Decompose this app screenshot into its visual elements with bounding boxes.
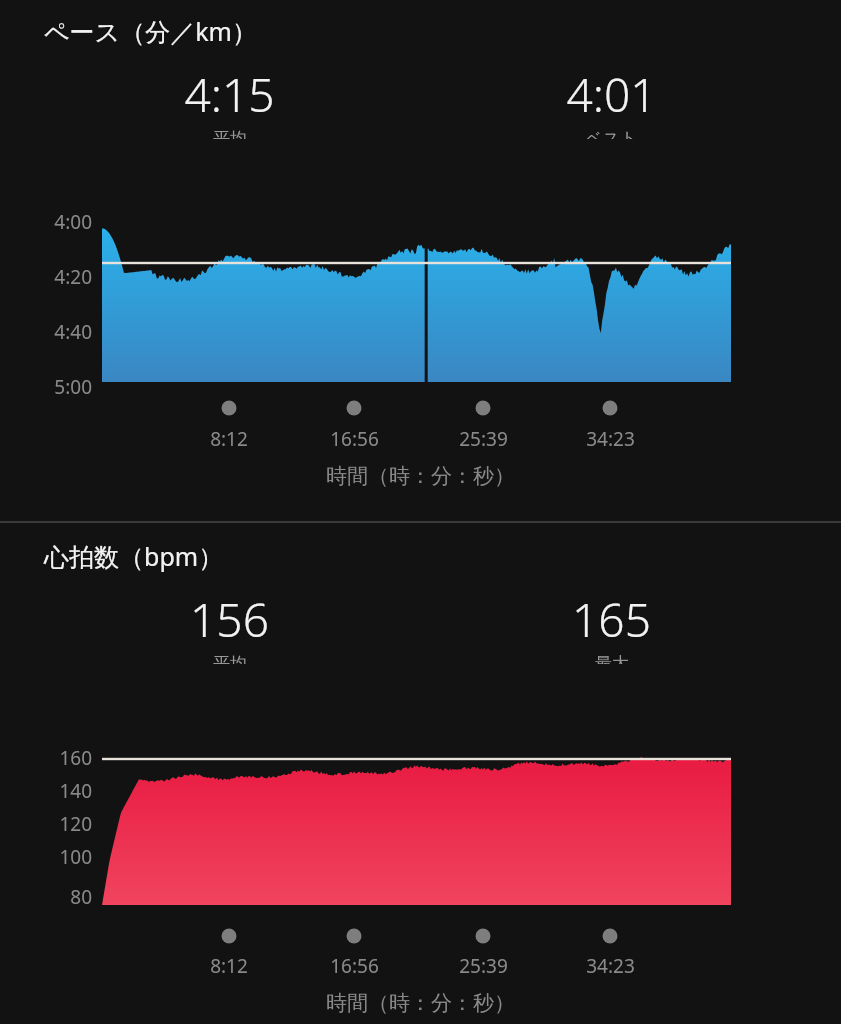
staticText: 4:40 <box>54 319 92 345</box>
staticText: 156 <box>190 588 269 651</box>
staticText: 8:12 <box>210 426 248 452</box>
button[interactable]: 心拍数（bpm） <box>44 539 224 573</box>
staticText: 4:15 <box>184 63 275 126</box>
staticText: 16:56 <box>330 426 379 452</box>
staticText: 120 <box>59 811 92 837</box>
staticText: 16:56 <box>330 953 379 979</box>
button[interactable]: 156 <box>79 588 379 664</box>
staticText: 100 <box>59 844 92 870</box>
other: Heart rate chart <box>0 524 841 1024</box>
staticText: 34:23 <box>586 426 635 452</box>
staticText: 4:01 <box>566 63 657 126</box>
other: Pace chart <box>0 0 841 520</box>
staticText: 25:39 <box>459 426 508 452</box>
button[interactable]: 4:01 <box>461 63 761 139</box>
button[interactable]: ペース（分／km） <box>44 14 257 48</box>
staticText: 最大 <box>595 653 629 664</box>
staticText: 4:00 <box>54 209 92 235</box>
staticText: 平均 <box>213 653 247 664</box>
staticText: ペース（分／km） <box>44 14 257 48</box>
staticText: 8:12 <box>210 953 248 979</box>
staticText: 80 <box>70 884 92 910</box>
staticText: 25:39 <box>459 953 508 979</box>
staticText: 平均 <box>213 128 247 139</box>
button[interactable]: 4:15 <box>79 63 379 139</box>
staticText: ベスト <box>585 128 638 139</box>
staticText: 5:00 <box>54 374 92 400</box>
button[interactable]: 165 <box>461 588 761 664</box>
staticText: 4:20 <box>54 264 92 290</box>
staticText: 時間（時：分：秒） <box>326 990 515 1016</box>
staticText: 140 <box>59 778 92 804</box>
staticText: 160 <box>59 745 92 771</box>
staticText: 34:23 <box>586 953 635 979</box>
staticText: 心拍数（bpm） <box>44 539 224 573</box>
staticText: 時間（時：分：秒） <box>326 463 515 489</box>
staticText: 165 <box>572 588 651 651</box>
